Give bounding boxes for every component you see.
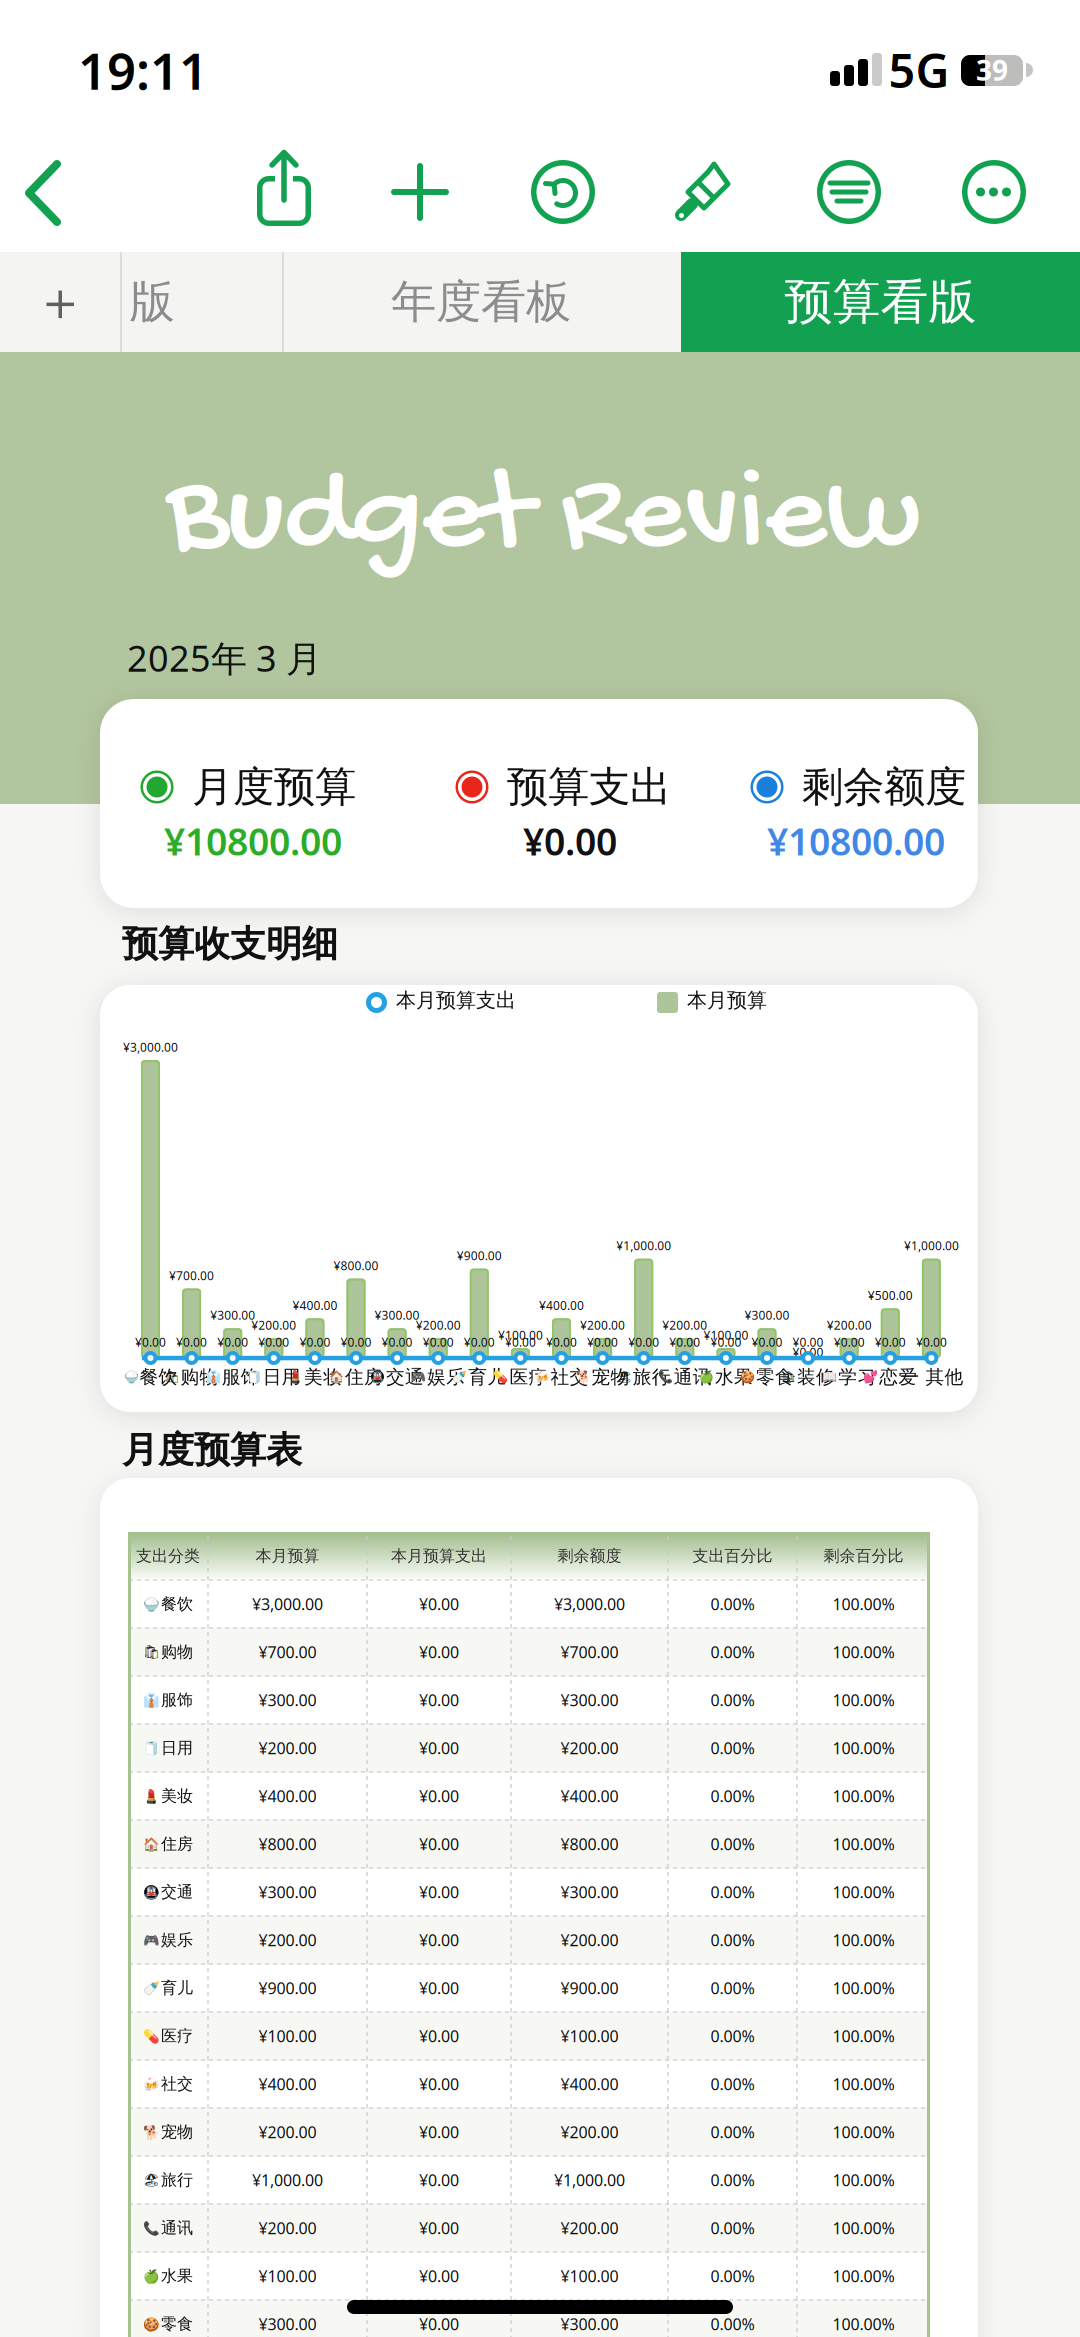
staticText: ¥900.00 xyxy=(258,1977,316,1999)
staticText: 🛍 xyxy=(165,1370,180,1384)
staticText: ¥400.00 xyxy=(258,2073,316,2095)
staticText: 🛍 xyxy=(143,1644,160,1660)
staticText: ¥100.00 xyxy=(258,2265,316,2287)
button[interactable]: 预算看版 xyxy=(681,252,1080,352)
staticText: 100.00% xyxy=(832,1641,894,1663)
staticText: 月度预算 xyxy=(192,762,356,812)
staticText: 餐饮 xyxy=(139,1365,177,1388)
staticText: 🎮 xyxy=(143,1932,160,1948)
staticText: ¥0.00 xyxy=(419,1593,459,1615)
button[interactable]: 版 xyxy=(0,0,100,100)
staticText: ¥0.00 xyxy=(176,1334,207,1350)
staticText: 5G xyxy=(888,39,949,101)
staticText: 100.00% xyxy=(832,2025,894,2047)
staticText: ¥0.00 xyxy=(419,2073,459,2095)
staticText: 学习 xyxy=(838,1365,876,1388)
staticText: 宠物 xyxy=(592,1365,630,1388)
staticText: 通讯 xyxy=(161,2218,193,2238)
staticText: 0.00% xyxy=(710,1689,754,1711)
staticText: 装修 xyxy=(797,1365,835,1388)
staticText: 旅行 xyxy=(161,2170,193,2190)
staticText: ¥300.00 xyxy=(258,1881,316,1903)
staticText: ¥0.00 xyxy=(793,1334,824,1350)
staticText: 零食 xyxy=(161,2314,193,2334)
staticText: 水果 xyxy=(161,2266,193,2286)
staticText: 100.00% xyxy=(832,1593,894,1615)
staticText: 🏖 xyxy=(617,1370,632,1384)
staticText: ¥200.00 xyxy=(258,2121,316,2143)
staticText: ¥10800.00 xyxy=(164,816,342,866)
staticText: 支出百分比 xyxy=(692,1546,772,1566)
staticText: ¥300.00 xyxy=(375,1307,420,1323)
staticText: 0.00% xyxy=(710,2169,754,2191)
staticText: 0.00% xyxy=(710,1833,754,1855)
staticText: ¥0.00 xyxy=(419,1929,459,1951)
staticText: ¥0.00 xyxy=(505,1334,536,1350)
staticText: ¥100.00 xyxy=(258,2025,316,2047)
staticText: ¥200.00 xyxy=(827,1317,872,1333)
staticText: 0.00% xyxy=(710,2073,754,2095)
staticText: 📖 xyxy=(822,1370,837,1384)
staticText: 0.00% xyxy=(710,2217,754,2239)
staticText: ¥200.00 xyxy=(258,1929,316,1951)
staticText: ¥400.00 xyxy=(560,1785,618,1807)
staticText: ¥300.00 xyxy=(560,1689,618,1711)
staticText: ¥0.00 xyxy=(419,1881,459,1903)
staticText: 0.00% xyxy=(710,2265,754,2287)
staticText: 一 其他 xyxy=(900,1365,963,1388)
button[interactable]: Add sheet xyxy=(0,0,120,100)
staticText: 💄 xyxy=(288,1370,303,1384)
staticText: ¥0.00 xyxy=(419,1785,459,1807)
staticText: 娱乐 xyxy=(161,1930,193,1950)
staticText: 39 xyxy=(976,51,1008,89)
staticText: 100.00% xyxy=(832,2217,894,2239)
staticText: 育儿 xyxy=(468,1365,506,1388)
staticText: ¥200.00 xyxy=(251,1317,296,1333)
staticText: 100.00% xyxy=(832,2313,894,2335)
staticText: 社交 xyxy=(550,1365,588,1388)
staticText: 水果 xyxy=(715,1365,753,1388)
staticText: ¥400.00 xyxy=(292,1297,337,1313)
staticText: 本月预算 xyxy=(687,988,767,1013)
staticText: ¥1,000.00 xyxy=(904,1238,959,1254)
staticText: ¥800.00 xyxy=(333,1258,378,1273)
staticText: 恋爱 xyxy=(879,1365,917,1388)
staticText: 服饰 xyxy=(161,1690,193,1710)
staticText: ¥300.00 xyxy=(210,1307,255,1323)
staticText: 日用 xyxy=(263,1365,301,1388)
staticText: ¥100.00 xyxy=(560,2025,618,2047)
staticText: ¥0.00 xyxy=(916,1334,947,1350)
staticText: 🧻 xyxy=(143,1740,160,1756)
staticText: 🍪 xyxy=(740,1370,755,1384)
staticText: ¥200.00 xyxy=(416,1317,461,1333)
staticText: ¥0.00 xyxy=(419,1641,459,1663)
staticText: 🍻 xyxy=(143,2076,160,2092)
staticText: 娱乐 xyxy=(427,1365,465,1388)
staticText: ¥300.00 xyxy=(258,1689,316,1711)
staticText: ¥0.00 xyxy=(382,1334,413,1350)
staticText: ¥200.00 xyxy=(580,1317,625,1333)
staticText: ¥800.00 xyxy=(258,1833,316,1855)
staticText: 0.00% xyxy=(710,1881,754,1903)
staticText: 2025年 3 月 xyxy=(127,634,322,682)
staticText: 100.00% xyxy=(832,1689,894,1711)
staticText: ¥200.00 xyxy=(258,2217,316,2239)
staticText: 🚇 xyxy=(370,1370,385,1384)
staticText: 日用 xyxy=(161,1738,193,1758)
staticText: 美妆 xyxy=(304,1365,342,1388)
staticText: 100.00% xyxy=(832,1833,894,1855)
staticText: ¥3,000.00 xyxy=(554,1593,625,1615)
button[interactable]: 年度看板 xyxy=(0,0,398,100)
staticText: 0.00% xyxy=(710,1593,754,1615)
staticText: 支出分类 xyxy=(136,1546,200,1566)
staticText: ¥200.00 xyxy=(560,1737,618,1759)
staticText: 🚇 xyxy=(143,1884,160,1900)
staticText: ¥200.00 xyxy=(560,2217,618,2239)
